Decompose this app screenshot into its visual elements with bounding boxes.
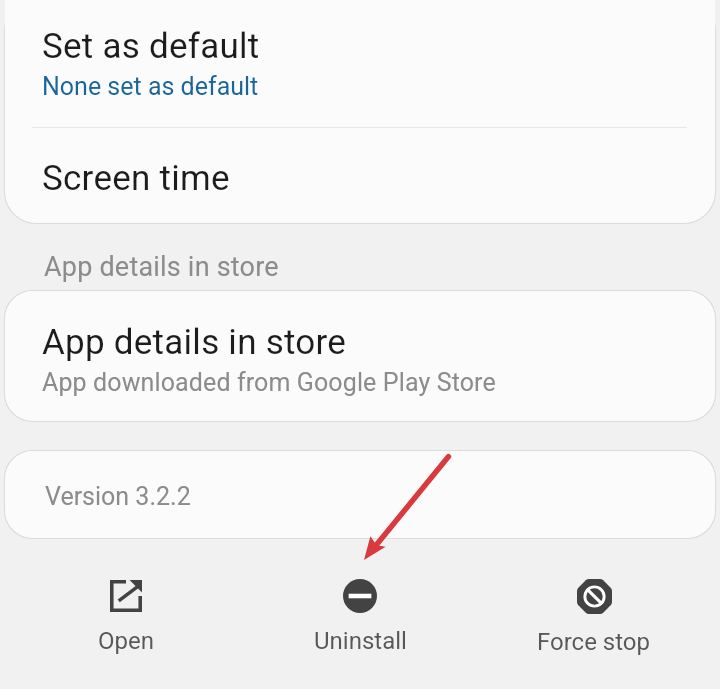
button[interactable]: Set as default xyxy=(5,0,715,127)
staticText: App details in store xyxy=(42,322,347,363)
staticText: Uninstall xyxy=(314,627,407,655)
button[interactable]: Version 3.2.2 xyxy=(5,451,715,538)
staticText: App downloaded from Google Play Store xyxy=(42,368,496,397)
button[interactable]: Open xyxy=(9,538,243,689)
other: Force stop xyxy=(577,579,612,614)
button[interactable]: Screen time xyxy=(5,128,715,223)
staticText: App details in store xyxy=(44,251,279,283)
staticText: Force stop xyxy=(537,628,651,656)
button[interactable]: Force stop xyxy=(477,538,711,689)
other: Open xyxy=(109,579,143,613)
staticText: Set as default xyxy=(42,26,260,67)
button[interactable]: Uninstall xyxy=(243,538,477,689)
staticText: Screen time xyxy=(42,158,230,199)
staticText: Open xyxy=(98,627,154,655)
other: Uninstall xyxy=(343,579,377,613)
button[interactable]: App details in store xyxy=(5,291,715,421)
staticText: Version 3.2.2 xyxy=(45,482,191,511)
staticText: None set as default xyxy=(42,72,259,101)
